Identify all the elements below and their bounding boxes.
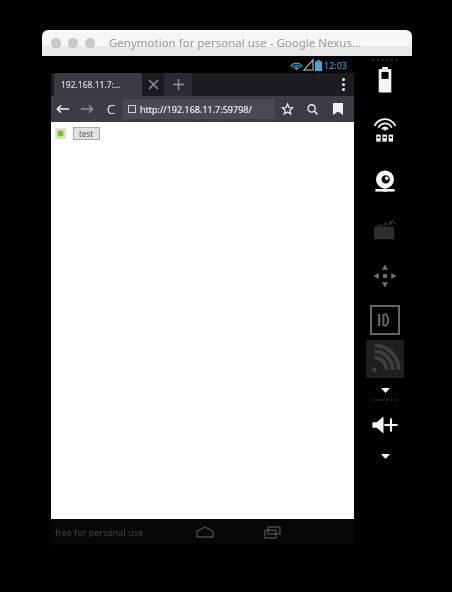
button[interactable]: Close tab [142, 73, 164, 96]
button[interactable]: Screen recording [370, 214, 400, 244]
staticText: 12:03 [324, 59, 348, 71]
button[interactable]: Battery [370, 64, 400, 94]
button[interactable]: Volume up [370, 410, 400, 440]
button[interactable]: http://192.168.11.7:59798/ [123, 99, 275, 119]
button[interactable]: Reload [99, 96, 123, 122]
staticText: C [107, 100, 116, 118]
button[interactable]: test [79, 128, 94, 139]
button[interactable]: New tab [164, 73, 192, 96]
button[interactable]: Accelerometer [371, 262, 399, 290]
button[interactable]: Expand [374, 384, 396, 396]
button[interactable]: Network [366, 340, 404, 378]
button[interactable]: GPS [369, 116, 401, 148]
staticText: Genymotion for personal use - Google Nex… [109, 35, 362, 51]
staticText: 192.168.11.7:… [61, 79, 121, 91]
button[interactable]: Camera [369, 166, 401, 198]
button[interactable]: Forward [75, 96, 99, 122]
button[interactable]: Home [190, 521, 220, 543]
button[interactable]: Bookmark [275, 96, 300, 122]
button[interactable]: More options [332, 73, 354, 96]
button[interactable]: Back [51, 96, 75, 122]
staticText: test [79, 128, 94, 139]
button[interactable]: 192.168.11.7:… [54, 73, 142, 96]
button[interactable]: Search [300, 96, 325, 122]
button[interactable]: Bookmarks [325, 96, 350, 122]
button[interactable]: Identifiers [371, 306, 399, 334]
staticText: free for personal use [55, 526, 144, 538]
staticText: http://192.168.11.7:59798/ [140, 103, 252, 115]
button[interactable]: Recent apps [257, 521, 287, 543]
button[interactable]: Volume down [374, 450, 396, 462]
